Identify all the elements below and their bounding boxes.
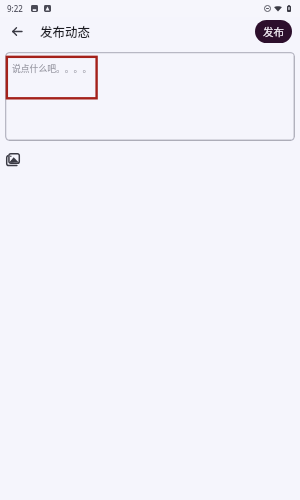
button[interactable]: 说点什么吧。。。。 [5, 52, 295, 141]
staticText: 发布 [263, 24, 284, 39]
staticText: 9:22 [7, 3, 23, 14]
staticText: 说点什么吧。。。。 [12, 62, 92, 75]
button[interactable]: 发布 [255, 20, 292, 43]
button[interactable]: Back [5, 20, 28, 43]
button[interactable]: Add photo [6, 153, 20, 166]
staticText: 发布动态 [40, 22, 91, 40]
